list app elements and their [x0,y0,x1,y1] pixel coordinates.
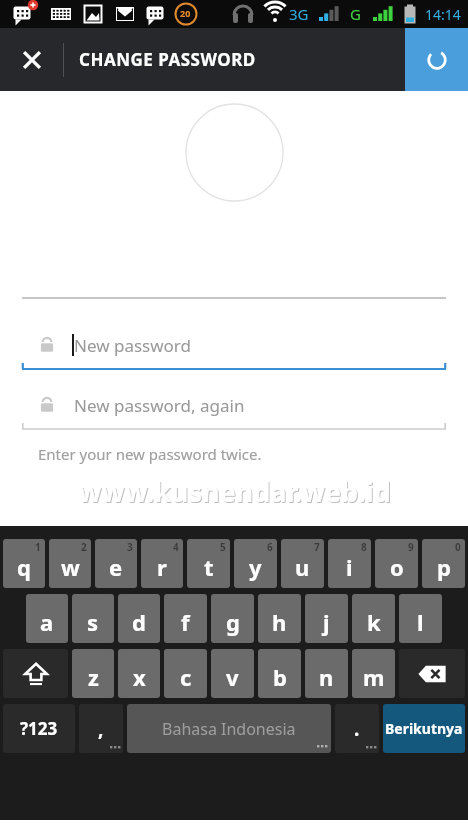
button[interactable]: z [72,649,114,698]
button[interactable]: l [399,594,442,643]
staticText: g [226,607,240,637]
staticText: 20 [180,7,191,19]
staticText: . [354,716,360,742]
button[interactable]: c [164,649,207,698]
staticText: u [295,552,310,582]
staticText: New password [74,334,192,357]
staticText: e [109,552,123,582]
staticText: h [272,607,287,637]
staticText: 7 [314,540,320,554]
staticText: n [319,662,334,692]
staticText: s [87,607,99,637]
staticText: www.kusnendar.web.id [78,473,391,510]
staticText: 9 [408,540,414,554]
staticText: 14:14 [425,5,461,24]
button[interactable]: d [118,594,160,643]
staticText: b [273,662,287,692]
button[interactable]: CHANGE PASSWORD [64,28,405,91]
button[interactable]: s [72,594,114,643]
button[interactable]: w [49,539,91,588]
button[interactable]: x [118,649,160,698]
staticText: Enter your new password twice. [38,444,262,464]
button[interactable]: k [352,594,395,643]
button[interactable]: New password, again [22,379,446,431]
button[interactable]: e [95,539,137,588]
button[interactable]: o [375,539,418,588]
button[interactable]: g [211,594,254,643]
button[interactable]: a [26,594,68,643]
staticText: l [417,607,424,637]
staticText: z [88,662,99,692]
staticText: 1 [35,540,41,554]
button[interactable]: , [79,704,123,753]
staticText: k [367,607,381,637]
button[interactable]: p [422,539,465,588]
staticText: x [133,662,146,692]
button[interactable]: y [234,539,277,588]
button[interactable]: h [258,594,301,643]
staticText: w [61,552,80,582]
staticText: Berikutnya [385,719,463,738]
button[interactable]: . [335,704,379,753]
staticText: o [390,552,404,582]
staticText: www.kusnendar.web.id [79,474,392,511]
staticText: ?123 [20,717,58,740]
staticText: 2 [81,540,87,554]
staticText: CHANGE PASSWORD [79,48,256,71]
staticText: p [437,552,451,582]
staticText: i [346,552,353,582]
staticText: d [132,607,146,637]
button[interactable]: Close [0,28,63,91]
button[interactable]: Bahasa Indonesia [127,704,331,753]
button[interactable]: f [164,594,207,643]
button[interactable]: b [258,649,301,698]
staticText: f [181,607,190,637]
button[interactable]: i [328,539,371,588]
staticText: , [98,716,104,742]
button[interactable]: q [3,539,45,588]
button[interactable]: Shift [3,649,68,698]
staticText: 0 [455,540,461,554]
staticText: c [180,662,192,692]
staticText: a [40,607,54,637]
button[interactable]: t [187,539,230,588]
staticText: 6 [267,540,273,554]
staticText: 8 [361,540,367,554]
staticText: t [204,552,214,582]
button[interactable]: New password [22,319,446,371]
button[interactable]: Berikutnya [383,704,465,753]
staticText: j [323,607,330,637]
staticText: y [249,552,262,582]
staticText: v [226,662,239,692]
button[interactable]: Backspace [399,649,465,698]
staticText: 4 [173,540,179,554]
staticText: 3G [289,4,309,24]
button[interactable]: Submit [405,28,468,91]
button[interactable]: ?123 [3,704,75,753]
staticText: 5 [220,540,226,554]
staticText: G [350,4,361,24]
button[interactable]: Profile picture [185,103,284,202]
staticText: r [157,552,167,582]
button[interactable]: u [281,539,324,588]
button[interactable]: n [305,649,348,698]
button[interactable]: r [141,539,183,588]
staticText: 3 [127,540,133,554]
staticText: New password, again [74,394,245,417]
button[interactable]: j [305,594,348,643]
button[interactable]: v [211,649,254,698]
staticText: Bahasa Indonesia [162,718,296,740]
staticText: q [17,552,31,582]
button[interactable]: m [352,649,395,698]
staticText: m [363,662,385,692]
